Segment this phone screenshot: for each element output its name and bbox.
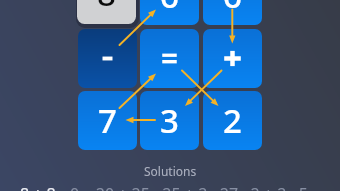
- staticText: 8 + 8: [20, 183, 56, 191]
- button[interactable]: Equals: [140, 29, 199, 88]
- staticText: Solutions: [144, 163, 197, 179]
- button[interactable]: Plus: [203, 29, 262, 88]
- staticText: 6: [160, 0, 179, 18]
- staticText: 8: [97, 0, 116, 16]
- staticText: 2: [223, 98, 242, 143]
- button[interactable]: Tile 6: [203, 0, 262, 25]
- button[interactable]: Tile 2: [203, 91, 262, 150]
- staticText: 3: [160, 98, 179, 143]
- staticText: 0 20 + 25 25 + 2 27 2 + 2 5: [70, 183, 308, 191]
- button[interactable]: Tile 3: [140, 91, 199, 150]
- button[interactable]: Selected tile 8: [77, 0, 136, 24]
- button[interactable]: Tile 6: [140, 0, 199, 25]
- staticText: 7: [98, 98, 117, 143]
- staticText: 6: [223, 0, 242, 18]
- button[interactable]: Minus: [78, 29, 137, 88]
- button[interactable]: Tile 7: [78, 91, 137, 150]
